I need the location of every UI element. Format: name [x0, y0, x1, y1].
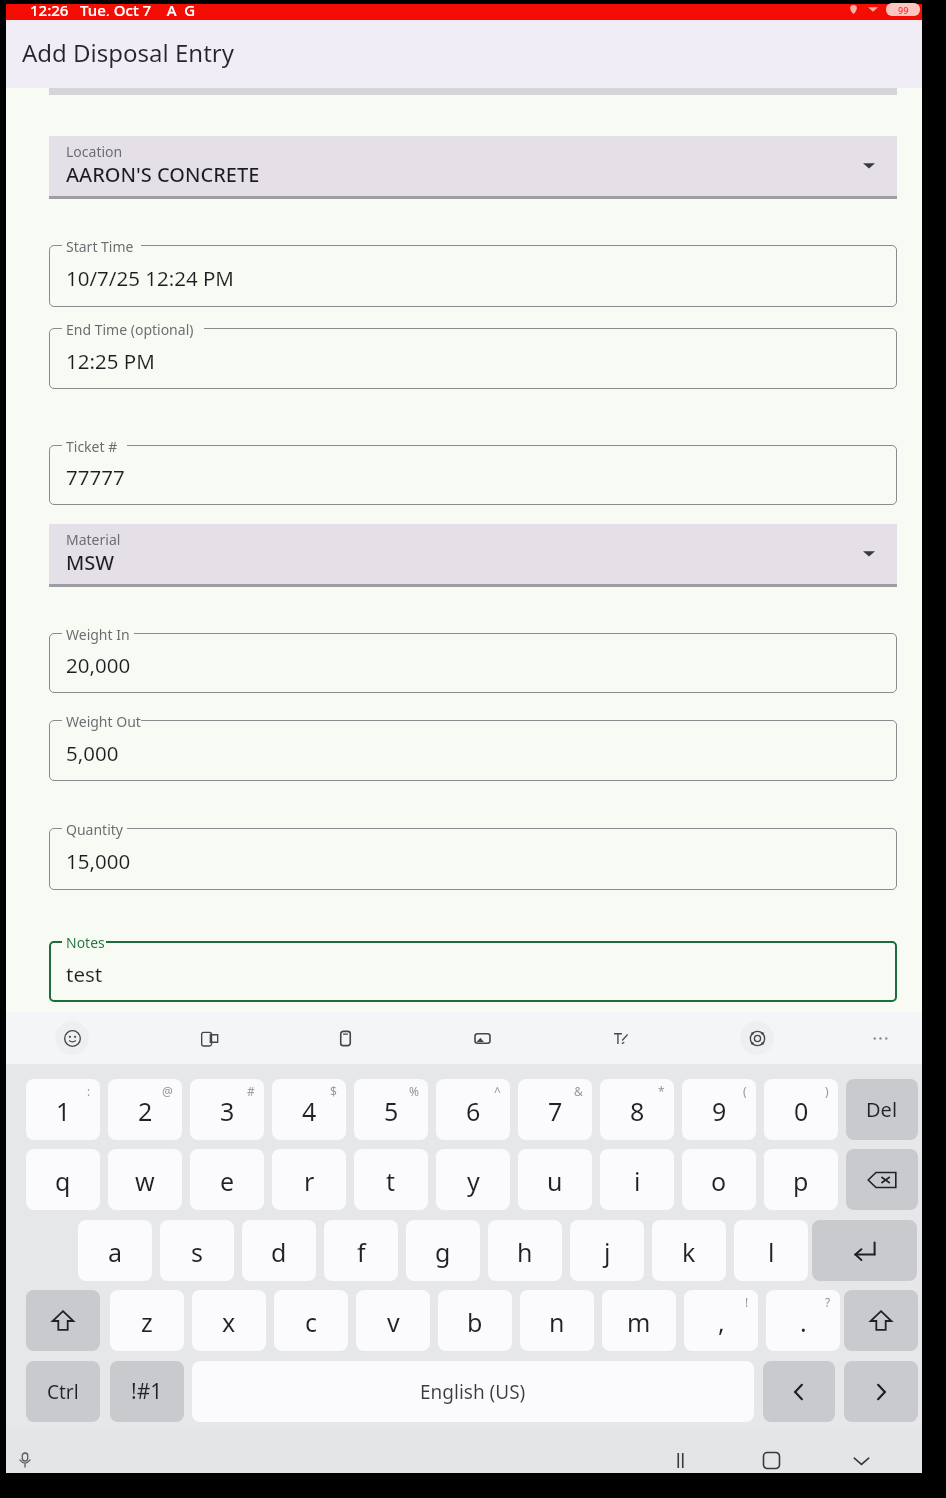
staticText: s [191, 1235, 203, 1269]
staticText: y [467, 1164, 480, 1198]
staticText: 2 [138, 1094, 153, 1128]
button[interactable]: t [354, 1149, 428, 1210]
button[interactable]: Next [844, 1361, 918, 1422]
button[interactable]: Voice input [10, 1445, 40, 1475]
button[interactable]: f [324, 1220, 398, 1281]
button[interactable]: m [602, 1290, 676, 1351]
button[interactable]: 1 [26, 1079, 100, 1140]
staticText: o [711, 1164, 727, 1198]
button[interactable]: Shift [26, 1290, 100, 1351]
button[interactable]: Clipboard [328, 1021, 362, 1055]
button[interactable]: Weight In [49, 633, 897, 693]
button[interactable]: 9 [682, 1079, 756, 1140]
button[interactable]: y [436, 1149, 510, 1210]
button[interactable]: r [272, 1149, 346, 1210]
button[interactable]: 8 [600, 1079, 674, 1140]
button[interactable]: Ctrl [26, 1361, 100, 1422]
staticText: 6 [466, 1094, 481, 1128]
button[interactable]: Settings [740, 1021, 774, 1055]
staticText: n [549, 1305, 565, 1339]
button[interactable]: End Time (optional) [49, 328, 897, 389]
button[interactable]: s [160, 1220, 234, 1281]
button[interactable]: 0 [764, 1079, 838, 1140]
button[interactable]: i [600, 1149, 674, 1210]
staticText: r [304, 1164, 315, 1198]
button[interactable]: Share clipboard [192, 1021, 226, 1055]
button[interactable]: 5 [354, 1079, 428, 1140]
staticText: $ [330, 1083, 337, 1099]
staticText: . [800, 1305, 807, 1339]
button[interactable]: Weight Out [49, 720, 897, 781]
button[interactable]: p [764, 1149, 838, 1210]
button[interactable]: Location [49, 136, 897, 199]
staticText: Add Disposal Entry [22, 36, 234, 69]
button[interactable]: Ticket # [49, 445, 897, 505]
staticText: v [387, 1305, 400, 1339]
staticText: English (US) [420, 1379, 526, 1405]
staticText: x [222, 1305, 236, 1339]
staticText: AARON'S CONCRETE [66, 161, 260, 188]
button[interactable]: q [26, 1149, 100, 1210]
staticText: 5,000 [66, 739, 119, 767]
staticText: p [793, 1164, 809, 1198]
staticText: ^ [494, 1083, 501, 1099]
button[interactable]: Delete [846, 1079, 918, 1140]
staticText: u [547, 1164, 563, 1198]
button[interactable]: o [682, 1149, 756, 1210]
button[interactable]: l [734, 1220, 808, 1281]
button[interactable]: . [766, 1290, 840, 1351]
button[interactable]: j [570, 1220, 644, 1281]
button[interactable]: Emoji [55, 1021, 89, 1055]
button[interactable]: 4 [272, 1079, 346, 1140]
button[interactable]: 3 [190, 1079, 264, 1140]
staticText: 12:25 PM [66, 347, 155, 375]
staticText: b [467, 1305, 483, 1339]
button[interactable]: g [406, 1220, 480, 1281]
button[interactable]: Backspace [846, 1149, 918, 1210]
button[interactable]: More [863, 1021, 897, 1055]
button[interactable]: d [242, 1220, 316, 1281]
button[interactable]: English (US) [192, 1361, 754, 1422]
button[interactable]: w [108, 1149, 182, 1210]
button[interactable]: z [110, 1290, 184, 1351]
button[interactable]: k [652, 1220, 726, 1281]
button[interactable]: b [438, 1290, 512, 1351]
button[interactable]: Material [49, 524, 897, 587]
staticText: l [768, 1235, 775, 1269]
button[interactable]: e [190, 1149, 264, 1210]
button[interactable]: Recents [665, 1445, 695, 1475]
button[interactable]: v [356, 1290, 430, 1351]
button[interactable]: 7 [518, 1079, 592, 1140]
button[interactable]: x [192, 1290, 266, 1351]
button[interactable]: 2 [108, 1079, 182, 1140]
button[interactable]: Handwriting [603, 1021, 637, 1055]
staticText: w [135, 1164, 155, 1198]
button[interactable]: 6 [436, 1079, 510, 1140]
button[interactable]: Quantity [49, 828, 897, 890]
staticText: 8 [630, 1094, 645, 1128]
staticText: 99 [898, 4, 909, 16]
staticText: MSW [66, 549, 115, 576]
button[interactable]: u [518, 1149, 592, 1210]
staticText: : [87, 1083, 91, 1099]
staticText: Ticket # [66, 437, 118, 456]
button[interactable]: Previous [763, 1361, 835, 1422]
button[interactable]: Notes [49, 941, 897, 1002]
button[interactable]: c [274, 1290, 348, 1351]
button[interactable]: , [684, 1290, 758, 1351]
button[interactable]: Enter [812, 1220, 917, 1281]
button[interactable]: Stickers [465, 1021, 499, 1055]
staticText: f [357, 1235, 366, 1269]
button[interactable]: Start Time [49, 245, 897, 307]
button[interactable]: Symbols [110, 1361, 184, 1422]
button[interactable]: Hide keyboard [846, 1445, 876, 1475]
button[interactable]: Shift [844, 1290, 918, 1351]
staticText: 15,000 [66, 847, 131, 875]
button[interactable]: n [520, 1290, 594, 1351]
button[interactable]: h [488, 1220, 562, 1281]
staticText: i [634, 1164, 641, 1198]
button[interactable]: a [78, 1220, 152, 1281]
button[interactable]: Home [756, 1445, 786, 1475]
staticText: 12:26 Tue, Oct 7 A G [30, 0, 196, 16]
staticText: 7 [548, 1094, 563, 1128]
